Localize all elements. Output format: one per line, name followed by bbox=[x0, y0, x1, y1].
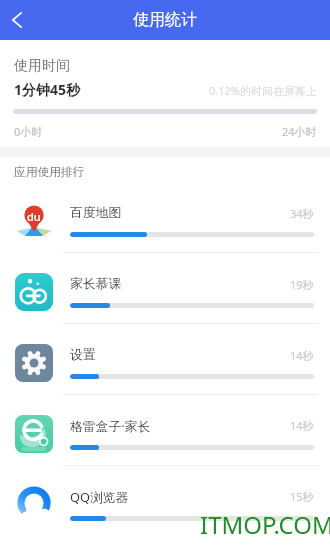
staticText: du bbox=[27, 209, 41, 224]
button[interactable]: 家长慕课 bbox=[0, 253, 330, 324]
staticText: 0小时 bbox=[14, 124, 43, 139]
button[interactable]: Back bbox=[0, 0, 34, 40]
button[interactable]: 设置 bbox=[0, 324, 330, 395]
button[interactable]: 格雷盒子·家长 bbox=[0, 395, 330, 466]
staticText: 1分钟45秒 bbox=[14, 80, 81, 99]
staticText: 应用使用排行 bbox=[14, 165, 85, 180]
staticText: 使用时间 bbox=[14, 57, 70, 75]
staticText: 0.12%的时间在屏幕上 bbox=[209, 83, 317, 98]
staticText: 14秒 bbox=[290, 348, 314, 363]
staticText: 使用统计 bbox=[133, 10, 197, 30]
staticText: 14秒 bbox=[290, 418, 314, 433]
staticText: 家长慕课 bbox=[70, 276, 122, 292]
staticText: ITMOP.COM bbox=[200, 508, 330, 541]
staticText: 19秒 bbox=[290, 277, 314, 292]
staticText: 15秒 bbox=[290, 489, 314, 504]
staticText: 24小时 bbox=[282, 124, 317, 139]
staticText: QQ浏览器 bbox=[70, 488, 129, 505]
staticText: 格雷盒子·家长 bbox=[70, 417, 151, 434]
staticText: 设置 bbox=[70, 347, 96, 363]
button[interactable]: du bbox=[0, 182, 330, 253]
staticText: 百度地图 bbox=[70, 205, 122, 221]
button[interactable]: QQ浏览器 bbox=[0, 466, 330, 537]
staticText: 34秒 bbox=[290, 206, 314, 221]
